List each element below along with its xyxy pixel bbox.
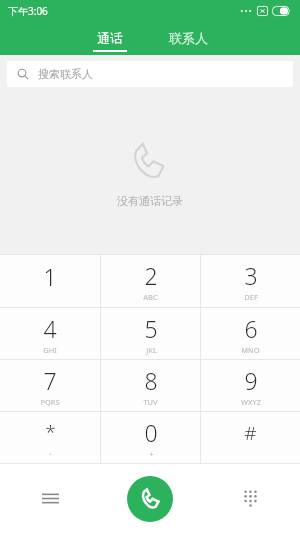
staticText: 1 (43, 261, 57, 292)
button[interactable]: 5 (101, 308, 200, 359)
staticText: 6 (244, 313, 258, 344)
staticText: 2 (144, 260, 158, 291)
button[interactable]: Call (127, 476, 173, 522)
staticText: DEF (244, 292, 258, 302)
staticText: 通话 (97, 30, 123, 46)
staticText: , (49, 446, 52, 456)
staticText: 0 (144, 417, 158, 448)
button[interactable]: 6 (201, 308, 300, 359)
staticText: + (149, 449, 154, 459)
staticText: 搜索联系人 (38, 67, 93, 81)
staticText: 8 (144, 365, 158, 396)
staticText: 7 (43, 365, 57, 396)
staticText: ABC (143, 292, 158, 302)
button[interactable]: Menu (0, 464, 100, 533)
button[interactable]: * (0, 412, 100, 463)
staticText: # (244, 420, 257, 446)
button[interactable]: 通话 (85, 30, 135, 55)
button[interactable]: Dialpad (200, 464, 300, 533)
button[interactable]: # (201, 412, 300, 463)
button[interactable]: 联系人 (161, 30, 216, 55)
button[interactable]: 8 (101, 360, 200, 411)
staticText: GHI (43, 345, 57, 355)
staticText: 4 (43, 313, 57, 344)
button[interactable]: 9 (201, 360, 300, 411)
button[interactable]: 0 (101, 412, 200, 463)
staticText: 9 (244, 365, 258, 396)
staticText: 联系人 (169, 30, 208, 46)
button[interactable]: 搜索联系人 (7, 61, 293, 87)
staticText: WXYZ (241, 397, 261, 407)
staticText: JKL (146, 345, 157, 355)
staticText: TUV (143, 397, 158, 407)
staticText: 没有通话记录 (117, 194, 183, 208)
staticText: 下午3:06 (8, 4, 48, 18)
button[interactable]: 3 (201, 255, 300, 307)
staticText: MNO (241, 345, 260, 355)
staticText: 5 (144, 313, 158, 344)
button[interactable]: 4 (0, 308, 100, 359)
staticText: * (45, 419, 56, 445)
staticText: PQRS (40, 397, 60, 407)
staticText: 3 (244, 260, 258, 291)
button[interactable]: 1 (0, 255, 100, 307)
button[interactable]: 2 (101, 255, 200, 307)
button[interactable]: 7 (0, 360, 100, 411)
